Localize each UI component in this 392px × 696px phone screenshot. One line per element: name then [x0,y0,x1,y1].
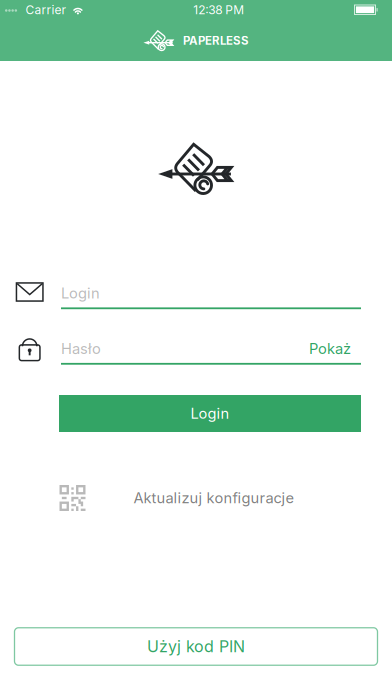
button[interactable]: Aktualizuj konfiguracje [51,481,302,515]
staticText: 12:38 PM [193,3,244,17]
button[interactable]: Pokaż [309,340,361,357]
staticText: Hasło [61,340,101,357]
staticText: PAPERLESS [183,34,249,47]
staticText: Carrier [25,3,66,17]
staticText: Login [190,405,229,422]
button[interactable]: Login [59,395,361,432]
staticText: Pokaż [309,340,351,357]
staticText: Użyj kod PIN [147,637,245,656]
staticText: Login [61,284,100,302]
staticText: Aktualizuj konfiguracje [133,489,294,507]
button[interactable]: Użyj kod PIN [14,628,377,665]
